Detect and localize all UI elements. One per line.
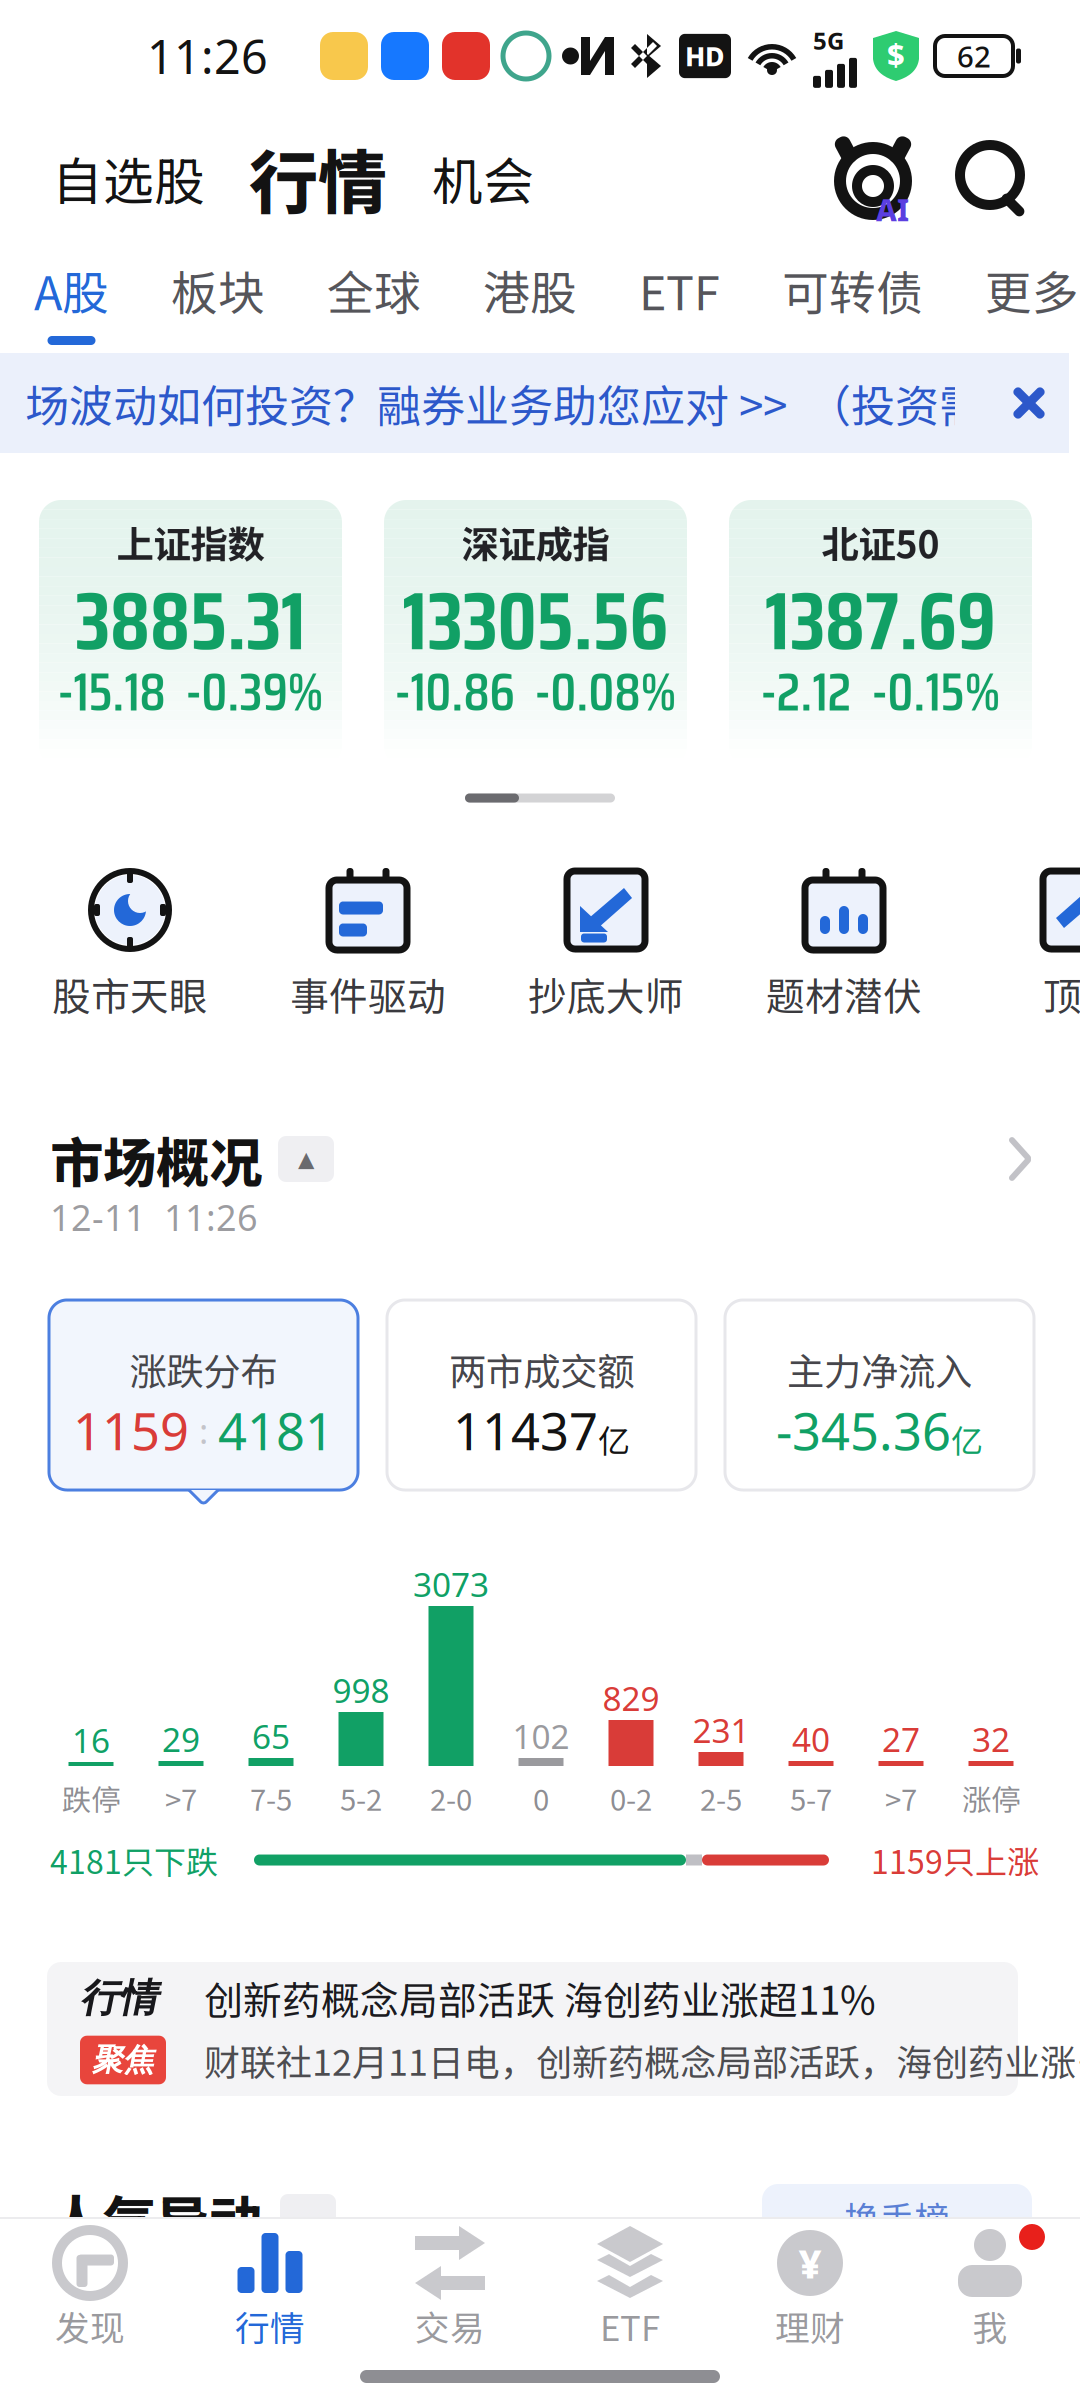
staticText: >7 [165, 1777, 197, 1819]
staticText: HD [685, 38, 725, 74]
staticText: 11437 [453, 1396, 598, 1465]
staticText: $ [887, 33, 905, 75]
staticText: ¥ [798, 2236, 821, 2290]
staticText: 抄底大师 [528, 966, 684, 1022]
button[interactable]: 两市成交额 [387, 1300, 696, 1514]
staticText: 涨停 [962, 1777, 1020, 1819]
staticText: 3885.31 [75, 557, 306, 685]
button[interactable]: AI助手 [826, 130, 922, 226]
button[interactable]: 上证指数 [39, 500, 342, 768]
button[interactable]: 行情 [47, 1962, 1018, 2096]
staticText: 11:26 [147, 24, 268, 88]
staticText: 顶底 [1043, 966, 1080, 1022]
staticText: 自选股 [52, 141, 205, 215]
button[interactable]: 可转债 [782, 244, 923, 353]
button[interactable]: 抄底大师 [487, 862, 725, 1030]
staticText: 4181 [218, 1396, 334, 1465]
staticText: 更多 [985, 256, 1079, 324]
staticText: -15.18 [57, 650, 165, 734]
staticText: 2-5 [700, 1777, 742, 1819]
staticText: 可转债 [782, 256, 923, 324]
staticText: -345.36 [776, 1396, 951, 1465]
staticText: ETF [600, 2301, 660, 2351]
staticText: 16 [72, 1717, 110, 1763]
staticText: 北证50 [821, 515, 939, 569]
staticText: 12-11 11:26 [50, 1192, 258, 1241]
button[interactable]: 我 [900, 2219, 1080, 2353]
staticText: 62 [957, 36, 991, 76]
staticText: 5-2 [340, 1777, 382, 1819]
button[interactable]: 市场概况 [0, 1129, 1080, 1189]
staticText: 3073 [413, 1561, 489, 1607]
button[interactable]: 板块 [171, 244, 265, 353]
staticText: 两市成交额 [449, 1342, 634, 1396]
staticText: 1159 [73, 1396, 189, 1465]
staticText: 市场概况 [50, 1120, 262, 1198]
staticText: 0 [533, 1777, 549, 1819]
button[interactable]: 关闭 [989, 353, 1069, 453]
staticText: 股市天眼 [52, 966, 208, 1022]
staticText: 我 [972, 2301, 1007, 2351]
staticText: 行情 [80, 1974, 158, 2022]
staticText: -2.12 [760, 650, 851, 734]
staticText: 行情 [249, 128, 387, 228]
staticText: 交易 [415, 2301, 485, 2351]
button[interactable]: 深证成指 [384, 500, 687, 768]
staticText: 聚焦 [92, 2041, 154, 2079]
staticText: 829 [602, 1675, 659, 1721]
staticText: 全球 [327, 256, 421, 324]
staticText: 跌停 [62, 1777, 120, 1819]
staticText: 231 [692, 1707, 749, 1753]
button[interactable]: 事件驱动 [249, 862, 487, 1030]
staticText: 理财 [775, 2301, 845, 2351]
staticText: 主力净流入 [787, 1342, 972, 1396]
button[interactable]: 交易 [360, 2219, 540, 2353]
staticText: A股 [34, 256, 109, 324]
button[interactable]: 机会 [432, 141, 534, 215]
staticText: 40 [792, 1716, 830, 1762]
staticText: 65 [252, 1713, 290, 1759]
staticText: 事件驱动 [290, 966, 446, 1022]
button[interactable]: ETF [540, 2219, 720, 2353]
button[interactable]: 港股 [483, 244, 577, 353]
staticText: 财联社12月11日电，创新药概念局部活跃，海创药业涨… [204, 2034, 1080, 2086]
staticText: 深证成指 [461, 515, 609, 569]
button[interactable]: 自选股 [52, 141, 205, 215]
staticText: 4181只下跌 [50, 1837, 218, 1883]
button[interactable]: ¥ [720, 2219, 900, 2353]
button[interactable]: 顶底 [963, 862, 1080, 1030]
button[interactable]: 全球 [327, 244, 421, 353]
staticText: 涨跌分布 [129, 1342, 277, 1396]
button[interactable]: 搜索 [954, 135, 1040, 221]
staticText: 5-7 [790, 1777, 832, 1819]
button[interactable]: 北证50 [729, 500, 1032, 768]
button[interactable]: 主力净流入 [725, 1300, 1034, 1514]
staticText: -0.39% [185, 650, 323, 734]
button[interactable]: 行情 [180, 2219, 360, 2353]
button[interactable]: 涨跌分布 [49, 1300, 358, 1514]
staticText: -0.08% [534, 650, 676, 734]
staticText: AI [876, 190, 909, 230]
staticText: 场波动如何投资？融券业务助您应对 >> （投资需谨 [25, 371, 1027, 435]
button[interactable]: 发现 [0, 2219, 180, 2353]
staticText: 5G [813, 24, 844, 57]
staticText: : [199, 1407, 208, 1454]
staticText: >7 [885, 1777, 917, 1819]
button[interactable]: 更多 [985, 244, 1079, 353]
staticText: -10.86 [394, 650, 514, 734]
staticText: 发现 [55, 2301, 125, 2351]
staticText: 人气异动 [50, 2178, 262, 2256]
button[interactable]: 题材潜伏 [725, 862, 963, 1030]
staticText: 题材潜伏 [766, 966, 922, 1022]
staticText: 13305.56 [402, 557, 668, 685]
button[interactable]: 股市天眼 [11, 862, 249, 1030]
staticText: 亿 [951, 1416, 983, 1462]
staticText: 亿 [598, 1416, 630, 1462]
staticText: 102 [512, 1713, 569, 1759]
button[interactable]: ETF [639, 244, 720, 353]
staticText: 2-0 [430, 1777, 472, 1819]
staticText: 换手榜 [844, 2192, 949, 2242]
button[interactable]: 行情 [249, 128, 387, 228]
button[interactable]: A股 [34, 244, 109, 353]
staticText: 板块 [171, 256, 265, 324]
